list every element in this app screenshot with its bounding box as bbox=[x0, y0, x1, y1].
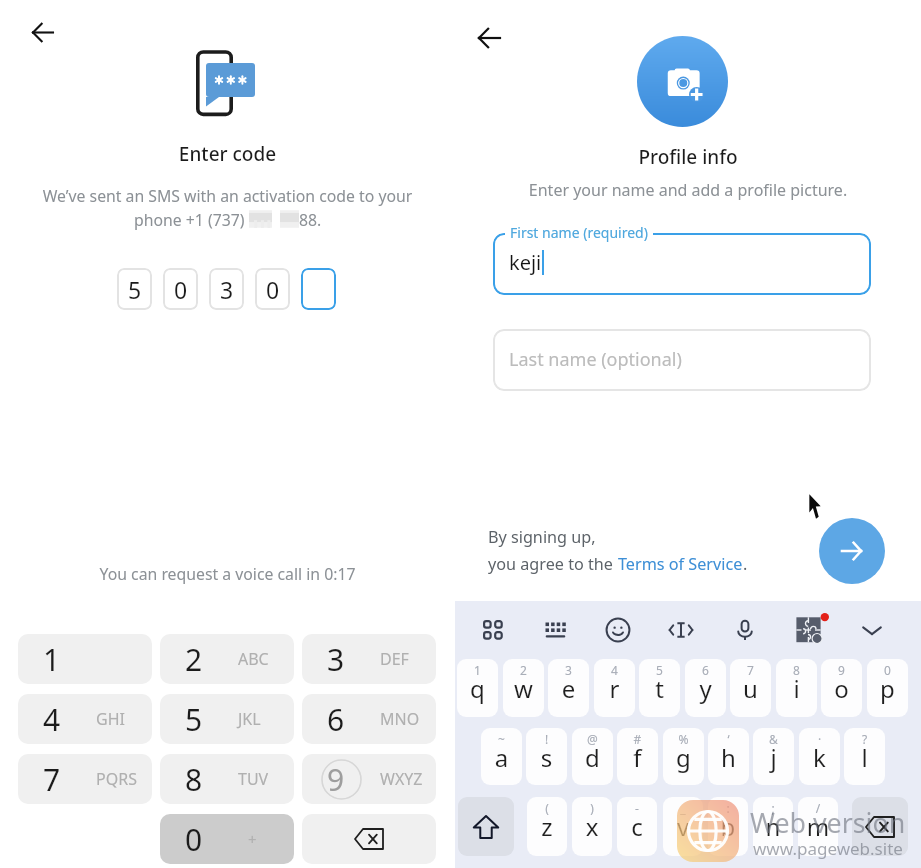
button[interactable]: Symbols bbox=[468, 606, 516, 654]
staticText: 3 bbox=[548, 662, 589, 678]
button[interactable]: Terms of Service bbox=[618, 553, 743, 575]
staticText: keji bbox=[509, 249, 542, 276]
button[interactable]: Shift bbox=[458, 797, 514, 856]
button[interactable]: ( bbox=[527, 797, 567, 856]
button[interactable]: 1 bbox=[18, 634, 152, 684]
button[interactable]: Add profile picture bbox=[637, 36, 728, 127]
staticText: By signing up, bbox=[488, 526, 596, 548]
button[interactable]: @ bbox=[572, 728, 613, 785]
staticText: a bbox=[481, 741, 522, 774]
staticText: z bbox=[527, 810, 567, 843]
staticText: ‘ bbox=[708, 731, 749, 747]
button[interactable]: 3 bbox=[209, 268, 244, 310]
staticText: 2 bbox=[503, 662, 544, 678]
button[interactable]: Back bbox=[469, 18, 509, 58]
button[interactable]: 4 bbox=[18, 694, 152, 744]
button[interactable]: Back bbox=[22, 12, 62, 52]
button[interactable]: _ bbox=[663, 797, 703, 856]
button[interactable]: Voice input bbox=[721, 606, 769, 654]
staticText: ) bbox=[572, 800, 612, 816]
button[interactable]: 6 bbox=[302, 694, 436, 744]
staticText: m bbox=[798, 810, 838, 843]
button[interactable]: 5 bbox=[117, 268, 152, 310]
button[interactable]: · bbox=[799, 728, 840, 785]
staticText: w bbox=[503, 672, 544, 705]
staticText: Web version bbox=[750, 804, 906, 841]
button[interactable]: Emoji bbox=[594, 606, 642, 654]
button[interactable]: 8 bbox=[160, 754, 294, 804]
button[interactable] bbox=[493, 233, 871, 295]
button[interactable]: 9 bbox=[302, 754, 436, 804]
button[interactable]: 3 bbox=[302, 634, 436, 684]
staticText: 88. bbox=[299, 209, 322, 231]
button[interactable]: & bbox=[753, 728, 794, 785]
button[interactable]: 3 bbox=[548, 659, 589, 717]
button[interactable]: 7 bbox=[18, 754, 152, 804]
button[interactable]: 0 bbox=[867, 659, 908, 717]
button[interactable]: Next bbox=[819, 518, 885, 584]
staticText: o bbox=[821, 672, 862, 705]
button[interactable]: ) bbox=[572, 797, 612, 856]
staticText: GHI bbox=[96, 708, 125, 730]
staticText: 4 bbox=[594, 662, 635, 678]
button[interactable]: ‘ bbox=[708, 728, 749, 785]
button[interactable]: ; bbox=[753, 797, 793, 856]
button[interactable]: 9 bbox=[821, 659, 862, 717]
button[interactable]: # bbox=[617, 728, 658, 785]
staticText: 7 bbox=[730, 662, 771, 678]
staticText: www.pageweb.site bbox=[753, 837, 903, 860]
staticText: JKL bbox=[238, 708, 261, 730]
staticText: 1 bbox=[457, 662, 498, 678]
button[interactable]: 2 bbox=[503, 659, 544, 717]
button[interactable]: 7 bbox=[730, 659, 771, 717]
button[interactable]: : bbox=[708, 797, 748, 856]
button[interactable]: ! bbox=[526, 728, 567, 785]
staticText: you agree to the bbox=[488, 553, 618, 575]
button[interactable]: / bbox=[798, 797, 838, 856]
staticText: 0 bbox=[266, 274, 280, 305]
staticText: p bbox=[867, 672, 908, 705]
staticText: TUV bbox=[238, 768, 269, 790]
staticText: u bbox=[730, 672, 771, 705]
button[interactable]: Hide keyboard bbox=[848, 606, 896, 654]
staticText: d bbox=[572, 741, 613, 774]
staticText: l bbox=[844, 741, 885, 774]
staticText: PQRS bbox=[96, 768, 137, 790]
staticText: b bbox=[708, 810, 748, 843]
staticText: 3 bbox=[327, 639, 345, 680]
button[interactable]: 8 bbox=[776, 659, 817, 717]
button[interactable] bbox=[301, 268, 336, 310]
button[interactable]: Backspace bbox=[852, 797, 908, 856]
button[interactable]: 5 bbox=[160, 694, 294, 744]
button[interactable]: Last name (optional) bbox=[493, 329, 871, 391]
button[interactable]: 0 bbox=[160, 814, 294, 864]
staticText: 3 bbox=[220, 274, 234, 305]
button[interactable]: 0 bbox=[255, 268, 290, 310]
button[interactable]: 4 bbox=[594, 659, 635, 717]
button[interactable]: 5 bbox=[639, 659, 680, 717]
staticText: _ bbox=[663, 800, 703, 816]
button[interactable]: % bbox=[663, 728, 704, 785]
staticText: & bbox=[753, 731, 794, 747]
button[interactable]: 0 bbox=[163, 268, 198, 310]
staticText: 0 bbox=[174, 274, 188, 305]
button[interactable]: ? bbox=[844, 728, 885, 785]
staticText: We’ve sent an SMS with an activation cod… bbox=[0, 185, 455, 207]
staticText: 5 bbox=[639, 662, 680, 678]
staticText: k bbox=[799, 741, 840, 774]
button[interactable]: 6 bbox=[685, 659, 726, 717]
staticText: First name (required) bbox=[510, 223, 648, 242]
staticText: 9 bbox=[327, 759, 345, 800]
button[interactable]: Extensions bbox=[784, 606, 832, 654]
button[interactable]: Text edit bbox=[657, 606, 705, 654]
staticText: h bbox=[708, 741, 749, 774]
staticText: ; bbox=[753, 800, 793, 816]
button[interactable]: 1 bbox=[457, 659, 498, 717]
button[interactable]: Keyboard bbox=[531, 606, 579, 654]
staticText: 9 bbox=[821, 662, 862, 678]
button[interactable]: Backspace bbox=[302, 814, 436, 864]
button[interactable]: ~ bbox=[481, 728, 522, 785]
button[interactable]: 2 bbox=[160, 634, 294, 684]
button[interactable]: - bbox=[617, 797, 657, 856]
staticText: . bbox=[743, 553, 748, 575]
